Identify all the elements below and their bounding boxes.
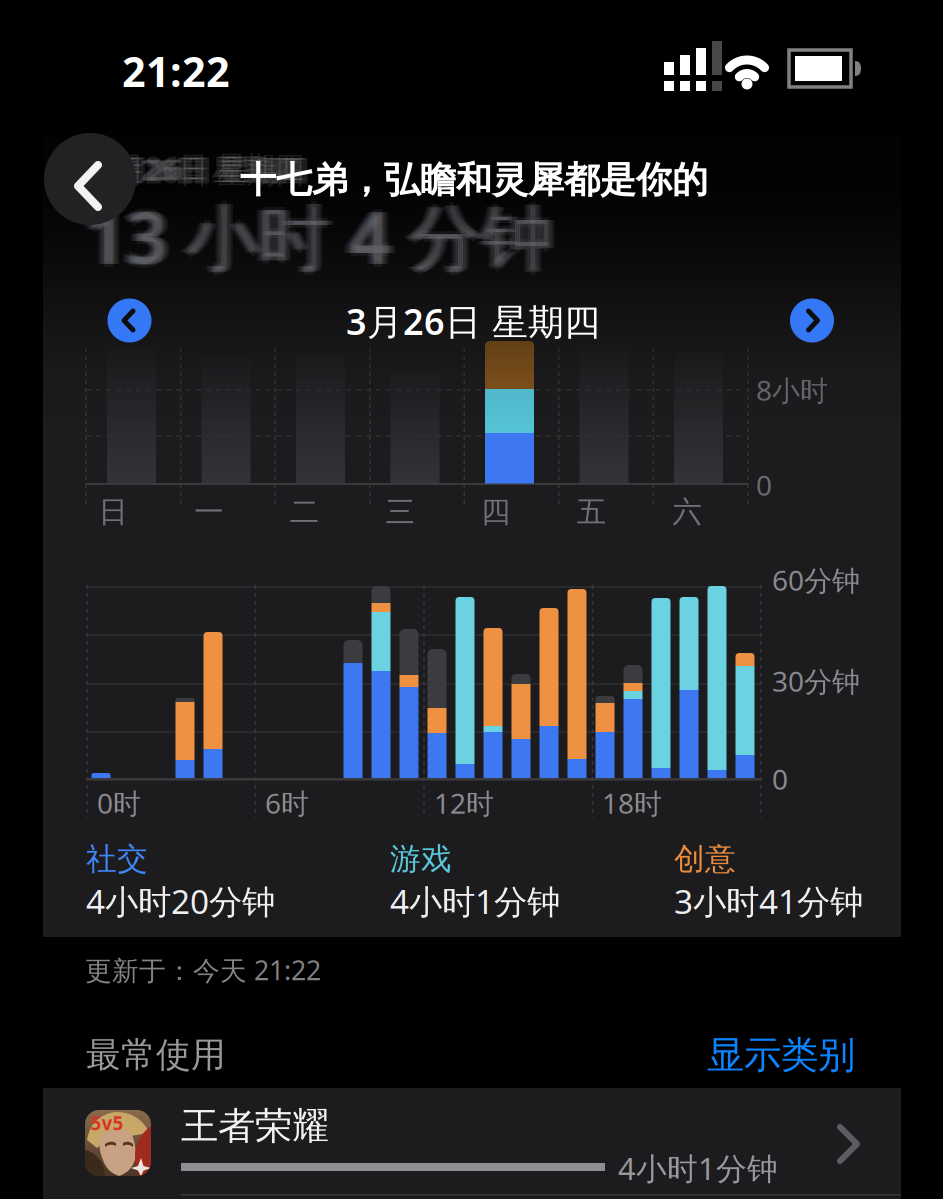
staticText: 4小时1分钟 [390, 879, 560, 923]
staticText: 13 小时 4 分钟 [83, 188, 551, 284]
staticText: 3月26日 星期四 [93, 149, 298, 188]
staticText: 13 小时 4 分钟 [85, 191, 553, 287]
staticText: 13 小时 4 分钟 [85, 188, 553, 284]
staticText: 3月26日 星期四 [105, 149, 310, 188]
staticText: 6时 [265, 784, 309, 822]
staticText: 3月26日 星期四 [95, 149, 300, 188]
staticText: 13 小时 4 分钟 [87, 188, 555, 284]
staticText: 三 [385, 494, 414, 530]
staticText: 二 [290, 494, 319, 530]
staticText: 日 [98, 494, 127, 530]
button[interactable]: Back [44, 133, 136, 225]
staticText: 0 [772, 760, 788, 798]
staticText: 0 [756, 466, 772, 504]
staticText: 3月26日 星期四 [346, 297, 600, 345]
staticText: 21:22 [122, 44, 230, 98]
staticText: 8小时 [756, 371, 828, 409]
staticText: 3月26日 星期四 [99, 146, 304, 185]
staticText: 社交 [86, 840, 148, 878]
button[interactable]: 王者荣耀 [43, 1088, 901, 1199]
staticText: 一 [194, 494, 223, 530]
staticText: 3月26日 星期四 [99, 152, 304, 191]
staticText: 13 小时 4 分钟 [85, 185, 553, 281]
staticText: 创意 [674, 840, 736, 878]
staticText: 0时 [97, 784, 141, 822]
staticText: 12时 [434, 784, 494, 822]
staticText: 显示类别 [707, 1032, 855, 1078]
staticText: 3月26日 星期四 [103, 149, 308, 188]
staticText: 3小时41分钟 [674, 879, 863, 923]
staticText: 30分钟 [772, 662, 860, 700]
button[interactable]: Previous day [107, 298, 151, 342]
staticText: 五 [577, 494, 606, 530]
staticText: 游戏 [390, 840, 452, 878]
staticText: 13 小时 4 分钟 [81, 188, 549, 284]
staticText: 4小时20分钟 [86, 879, 275, 923]
staticText: 13 小时 4 分钟 [91, 188, 559, 284]
staticText: 六 [672, 494, 701, 530]
staticText: 王者荣耀 [181, 1103, 329, 1149]
staticText: 18时 [602, 784, 662, 822]
staticText: 60分钟 [772, 561, 860, 599]
button[interactable]: Next day [790, 298, 834, 342]
staticText: 13 小时 4 分钟 [89, 188, 557, 284]
staticText: 3月26日 星期四 [97, 149, 302, 188]
staticText: 十七弟，弘瞻和灵犀都是你的 [240, 158, 708, 202]
staticText: 3月26日 星期四 [99, 149, 304, 188]
staticText: 5v5 [90, 1111, 123, 1135]
staticText: 更新于：今天 21:22 [85, 952, 321, 988]
staticText: 4小时1分钟 [618, 1148, 778, 1188]
button[interactable]: 显示类别 [695, 1032, 855, 1078]
staticText: 四 [481, 494, 510, 530]
staticText: 3月26日 星期四 [101, 149, 306, 188]
staticText: 13 小时 4 分钟 [79, 188, 547, 284]
staticText: 最常使用 [86, 1034, 226, 1076]
